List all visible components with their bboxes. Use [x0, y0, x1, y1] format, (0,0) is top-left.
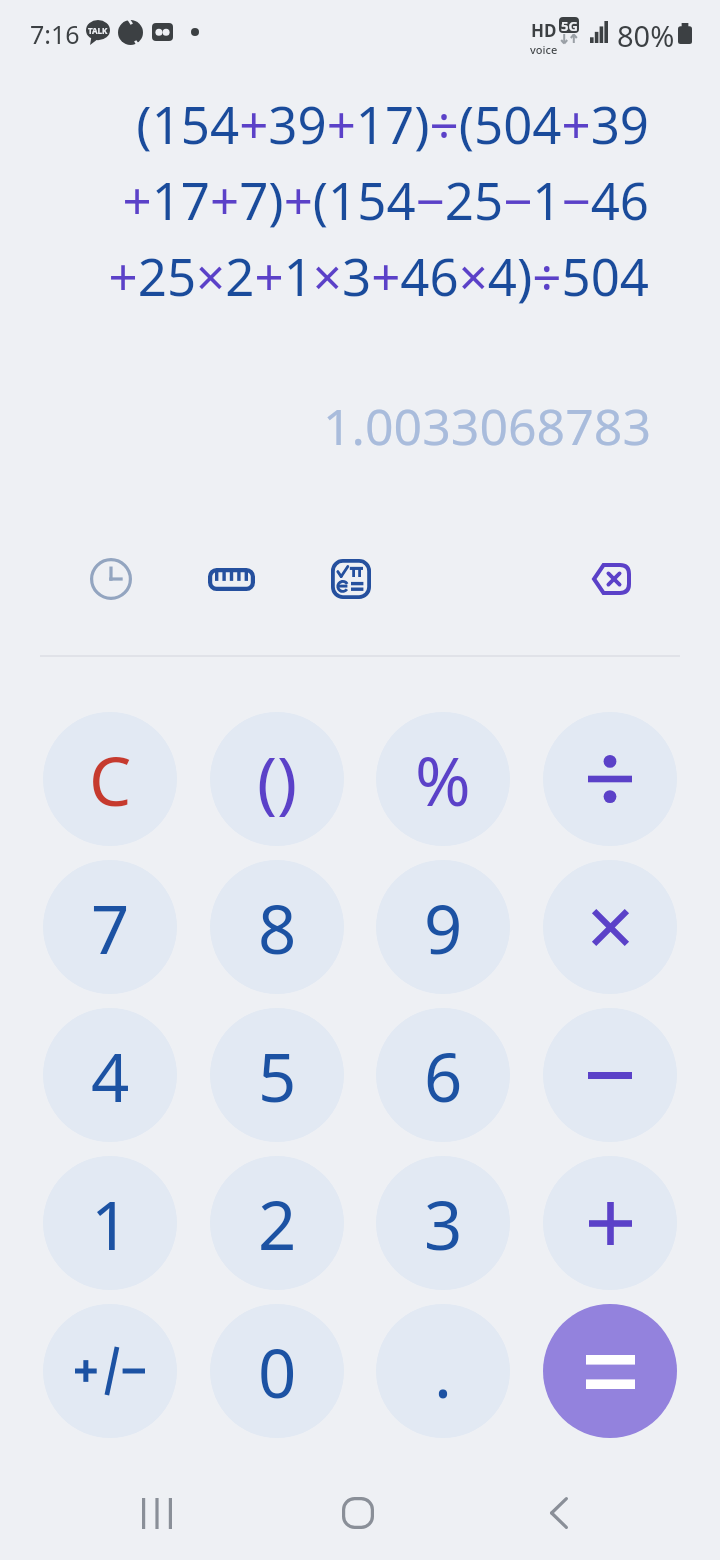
button[interactable]: History — [71, 539, 151, 619]
button[interactable]: 2 — [210, 1156, 344, 1290]
staticText: 80% — [617, 16, 675, 55]
button[interactable]: 1 — [43, 1156, 177, 1290]
staticText: 1 — [91, 1178, 130, 1269]
staticText: 1.0033068783 — [0, 392, 651, 460]
staticText: 4 — [91, 1030, 130, 1121]
button[interactable]: 9 — [376, 860, 510, 994]
button[interactable]: Recents — [117, 1472, 197, 1554]
button[interactable]: Home — [318, 1472, 398, 1554]
button[interactable]: Plus minus sign — [43, 1304, 177, 1438]
staticText: . — [434, 1326, 452, 1417]
button[interactable]: Back — [519, 1472, 599, 1554]
button[interactable]: Scientific calculator — [311, 539, 391, 619]
button[interactable]: Unit converter — [191, 539, 271, 619]
button[interactable]: () — [210, 712, 344, 846]
button[interactable]: Equals — [543, 1304, 677, 1438]
button[interactable]: . — [376, 1304, 510, 1438]
staticText: 9 — [424, 882, 463, 973]
button[interactable]: 5 — [210, 1008, 344, 1142]
staticText: % — [415, 734, 471, 825]
button[interactable]: Plus — [543, 1156, 677, 1290]
staticText: TALK — [88, 25, 108, 36]
staticText: 5 — [258, 1030, 297, 1121]
button[interactable]: 8 — [210, 860, 344, 994]
staticText: HD — [531, 19, 557, 42]
staticText: (154+39+17)÷(504+39 +17+7)+(154−25−1−46 … — [0, 89, 649, 311]
staticText: 2 — [258, 1178, 297, 1269]
staticText: 7:16 — [30, 17, 80, 51]
button[interactable]: 3 — [376, 1156, 510, 1290]
button[interactable]: Backspace — [570, 539, 650, 619]
button[interactable]: Multiply — [543, 860, 677, 994]
button[interactable]: 7 — [43, 860, 177, 994]
staticText: 8 — [258, 882, 297, 973]
staticText: () — [257, 734, 298, 825]
button[interactable]: 6 — [376, 1008, 510, 1142]
button[interactable]: 0 — [210, 1304, 344, 1438]
staticText: voice — [530, 42, 558, 57]
staticText: 0 — [258, 1326, 297, 1417]
button[interactable]: Divide — [543, 712, 677, 846]
button[interactable]: C — [43, 712, 177, 846]
staticText: 7 — [91, 882, 130, 973]
staticText: C — [89, 734, 132, 825]
staticText: 3 — [424, 1178, 463, 1269]
button[interactable]: Minus — [543, 1008, 677, 1142]
staticText: 5G — [561, 17, 578, 33]
button[interactable]: % — [376, 712, 510, 846]
button[interactable]: 4 — [43, 1008, 177, 1142]
staticText: 6 — [424, 1030, 463, 1121]
